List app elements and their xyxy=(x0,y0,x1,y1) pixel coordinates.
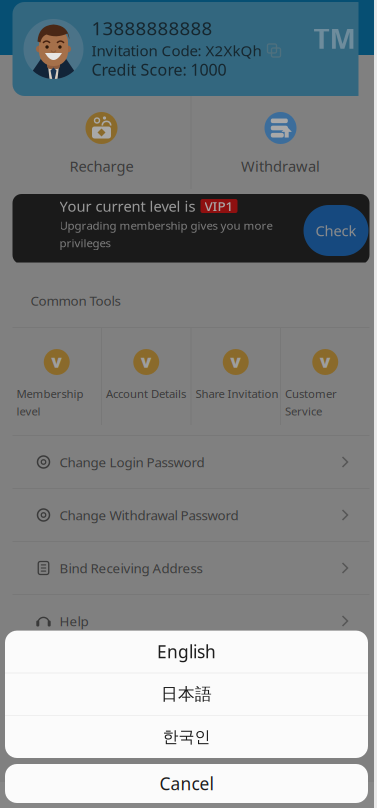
staticText: Customer xyxy=(285,386,337,401)
staticText: v xyxy=(141,349,152,373)
staticText: Personal center xyxy=(305,789,368,801)
staticText: privileges xyxy=(59,235,110,251)
button[interactable]: Help xyxy=(12,595,369,647)
button[interactable]: v xyxy=(12,328,101,425)
staticText: Invitation Code: X2XkQh xyxy=(91,40,261,61)
button[interactable]: Copy invitation code xyxy=(266,43,281,58)
button[interactable]: v xyxy=(281,328,369,425)
staticText: English xyxy=(157,640,216,663)
button[interactable]: Bind Receiving Address xyxy=(12,542,369,594)
staticText: Common Tools xyxy=(30,291,120,310)
staticText: Help xyxy=(59,612,88,630)
button[interactable]: 한국인 xyxy=(5,716,368,758)
staticText: 日本語 xyxy=(161,684,212,705)
staticText: Change Withdrawal Password xyxy=(59,506,238,524)
button[interactable]: v xyxy=(191,328,280,425)
staticText: v xyxy=(230,349,241,373)
button[interactable]: v xyxy=(102,328,190,425)
staticText: Credit Score: 1000 xyxy=(91,59,226,80)
staticText: Change Login Password xyxy=(59,453,204,471)
staticText: Share Invitation xyxy=(195,386,278,401)
staticText: 13888888888 xyxy=(91,15,212,41)
button[interactable]: Withdrawal xyxy=(191,96,369,189)
staticText: Cancel xyxy=(159,772,213,795)
staticText: Check xyxy=(315,220,356,240)
staticText: Account Details xyxy=(106,386,186,401)
staticText: TM xyxy=(313,19,355,57)
staticText: Withdrawal xyxy=(241,156,320,176)
button[interactable]: Cancel xyxy=(5,764,368,803)
staticText: Membership xyxy=(16,386,83,401)
staticText: Your current level is xyxy=(59,196,195,216)
button[interactable]: Change Login Password xyxy=(12,436,369,488)
staticText: Service xyxy=(285,403,322,419)
staticText: Staking xyxy=(172,789,202,801)
staticText: Bind Receiving Address xyxy=(59,559,202,577)
staticText: 한국인 xyxy=(162,727,210,747)
button[interactable]: 日本語 xyxy=(5,673,368,715)
staticText: Recharge xyxy=(69,156,133,176)
button[interactable]: Check xyxy=(303,205,368,256)
staticText: VIP1 xyxy=(204,197,233,215)
staticText: Upgrading membership gives you more xyxy=(59,217,272,233)
button[interactable]: History xyxy=(224,782,299,808)
button[interactable]: Staking xyxy=(150,782,224,808)
button[interactable]: Stock xyxy=(75,782,150,808)
staticText: v xyxy=(51,349,62,373)
button[interactable]: Personal center xyxy=(299,782,374,808)
button[interactable]: Change Withdrawal Password xyxy=(12,489,369,541)
button[interactable]: Recharge xyxy=(12,96,190,189)
button[interactable]: Home xyxy=(0,782,75,808)
staticText: v xyxy=(320,349,331,373)
button[interactable]: English xyxy=(5,631,368,673)
staticText: level xyxy=(16,403,40,419)
